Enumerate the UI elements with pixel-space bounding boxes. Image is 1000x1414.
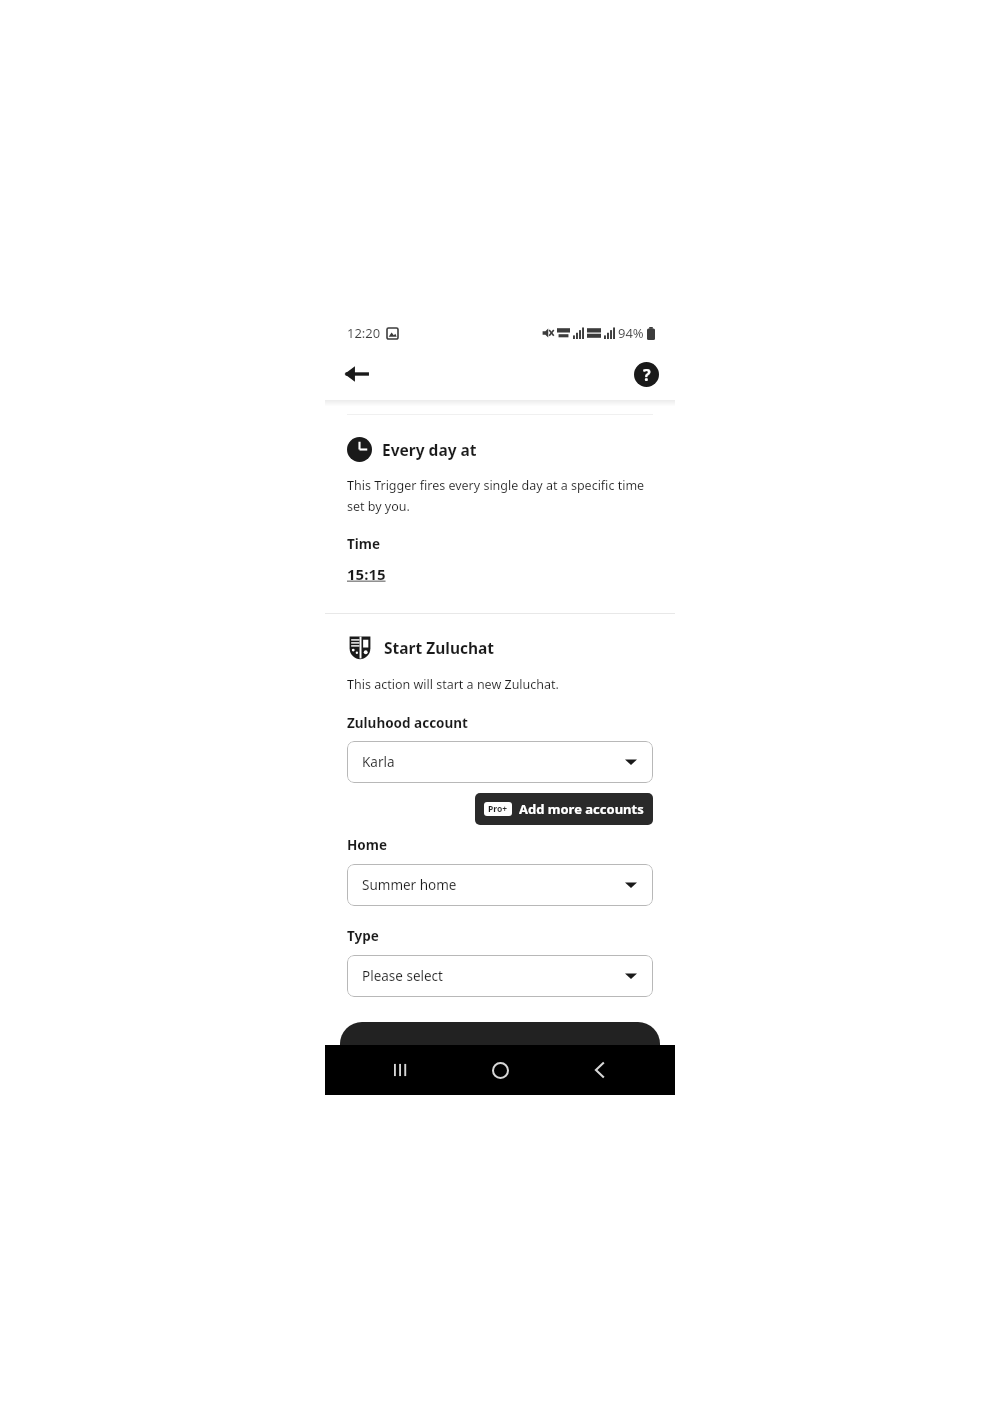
staticText: This Trigger fires every single day at a… (347, 477, 645, 514)
button[interactable]: Pro+ (475, 793, 653, 825)
button[interactable]: Help (627, 355, 665, 393)
staticText: 12:20 (347, 324, 381, 342)
button[interactable]: Karla (347, 741, 653, 783)
staticText: Start Zuluchat (384, 637, 495, 658)
staticText: 94% (618, 324, 644, 342)
button[interactable]: Back (576, 1046, 624, 1094)
button[interactable] (340, 1022, 660, 1062)
staticText: Please select (362, 967, 443, 985)
button[interactable]: 15:15 (347, 564, 386, 584)
button[interactable]: Summer home (347, 864, 653, 906)
button[interactable]: Home (476, 1046, 524, 1094)
staticText: Time (347, 535, 381, 553)
staticText: ? (643, 364, 651, 386)
button[interactable]: Back (335, 352, 379, 396)
staticText: Type (347, 927, 379, 945)
button[interactable]: Please select (347, 955, 653, 997)
staticText: This action will start a new Zuluchat. (347, 676, 559, 693)
staticText: Summer home (362, 876, 457, 894)
staticText: Pro+ (488, 803, 508, 815)
staticText: Home (347, 836, 387, 854)
staticText: Add more accounts (519, 800, 644, 818)
staticText: 15:15 (347, 564, 386, 584)
staticText: Every day at (382, 439, 477, 460)
button[interactable]: Recent apps (377, 1046, 425, 1094)
staticText: Karla (362, 753, 395, 771)
staticText: Zuluhood account (347, 714, 468, 732)
